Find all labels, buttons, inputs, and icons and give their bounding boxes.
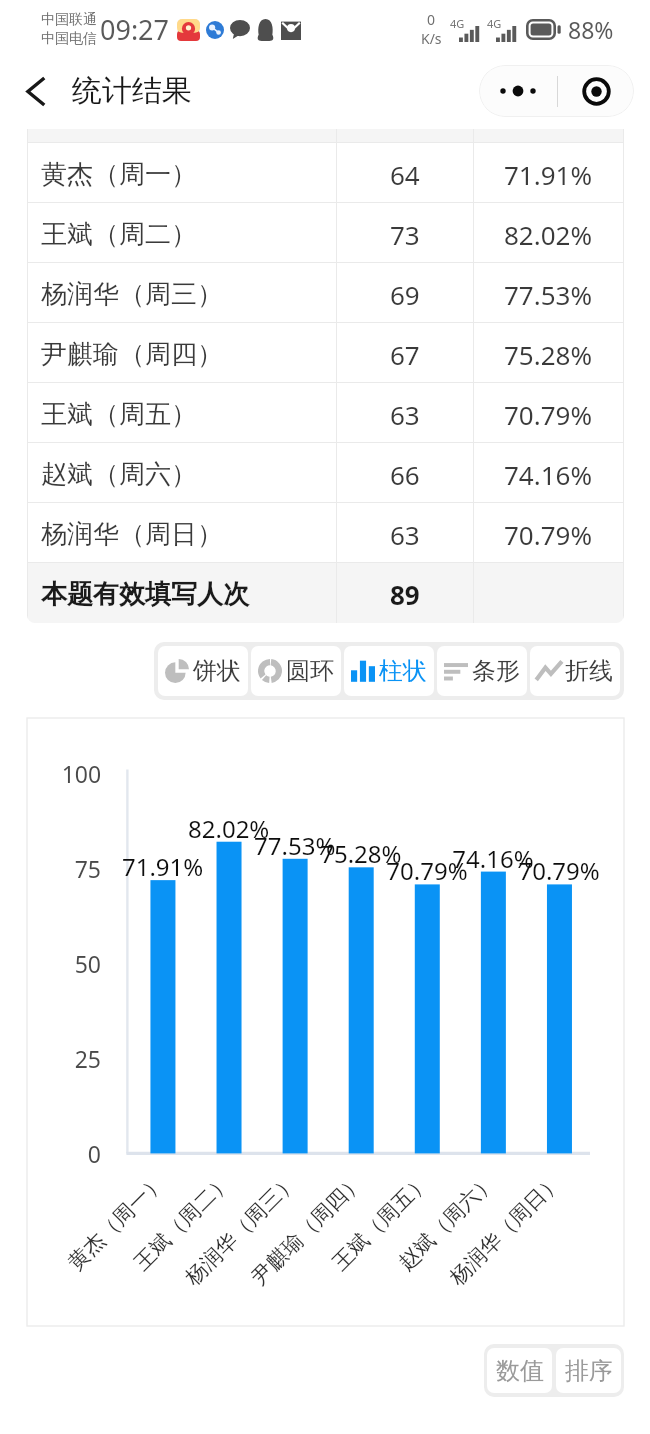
staticText: 黄杰（周一） xyxy=(41,158,197,191)
button[interactable]: 折线 xyxy=(530,646,620,696)
staticText: 尹麒瑜（周四） xyxy=(41,338,223,371)
staticText: 4G xyxy=(487,16,502,31)
button[interactable]: 数值 xyxy=(487,1348,552,1393)
staticText: 67 xyxy=(390,337,420,372)
button[interactable]: 本题有效填写人次 xyxy=(27,563,624,623)
staticText: 柱状 xyxy=(379,656,427,686)
staticText: K/s xyxy=(421,29,442,48)
button[interactable]: 黄杰（周一） xyxy=(27,143,624,202)
staticText: 82.02% xyxy=(504,217,593,252)
button[interactable]: 杨润华（周日） xyxy=(27,503,624,562)
staticText: 王斌（周二） xyxy=(41,218,197,251)
button[interactable]: 条形 xyxy=(437,646,527,696)
button[interactable]: 圆环 xyxy=(251,646,341,696)
staticText: 赵斌（周六） xyxy=(41,458,197,491)
staticText: 89 xyxy=(390,577,420,612)
staticText: 0 xyxy=(427,10,436,29)
button[interactable]: 饼状 xyxy=(158,646,248,696)
button[interactable]: 尹麒瑜（周四） xyxy=(27,323,624,382)
staticText: 条形 xyxy=(472,656,520,686)
staticText: 74.16% xyxy=(504,457,593,492)
staticText: 71.91% xyxy=(504,157,593,192)
staticText: 09:27 xyxy=(100,11,170,48)
staticText: 折线 xyxy=(565,656,613,686)
button[interactable]: 杨润华（周三） xyxy=(27,263,624,322)
staticText: 杨润华（周日） xyxy=(41,518,223,551)
staticText: 63 xyxy=(390,517,420,552)
staticText: 63 xyxy=(390,397,420,432)
button[interactable]: 赵斌（周六） xyxy=(27,443,624,502)
staticText: 饼状 xyxy=(193,656,241,686)
staticText: 数值 xyxy=(496,1356,544,1386)
staticText: 70.79% xyxy=(504,517,593,552)
button[interactable]: More options xyxy=(479,65,557,117)
button[interactable]: Close xyxy=(558,65,634,117)
button[interactable]: 排序 xyxy=(556,1348,621,1393)
button[interactable]: 王斌（周五） xyxy=(27,383,624,442)
staticText: 圆环 xyxy=(286,656,334,686)
staticText: 统计结果 xyxy=(72,72,192,110)
staticText: 66 xyxy=(390,457,420,492)
staticText: 王斌（周五） xyxy=(41,398,197,431)
staticText: 杨润华（周三） xyxy=(41,278,223,311)
button[interactable]: Back xyxy=(9,64,63,118)
staticText: 中国联通 xyxy=(41,11,97,29)
staticText: 排序 xyxy=(565,1356,613,1386)
staticText: 77.53% xyxy=(504,277,593,312)
staticText: 本题有效填写人次 xyxy=(41,578,249,611)
staticText: 70.79% xyxy=(504,397,593,432)
staticText: 75.28% xyxy=(504,337,593,372)
staticText: 88% xyxy=(568,14,614,45)
button[interactable]: 柱状 xyxy=(344,646,434,696)
staticText: 中国电信 xyxy=(41,30,97,48)
button[interactable]: 王斌（周二） xyxy=(27,203,624,262)
staticText: 73 xyxy=(390,217,420,252)
staticText: 69 xyxy=(390,277,420,312)
staticText: 64 xyxy=(390,157,420,192)
staticText: 4G xyxy=(450,16,465,31)
